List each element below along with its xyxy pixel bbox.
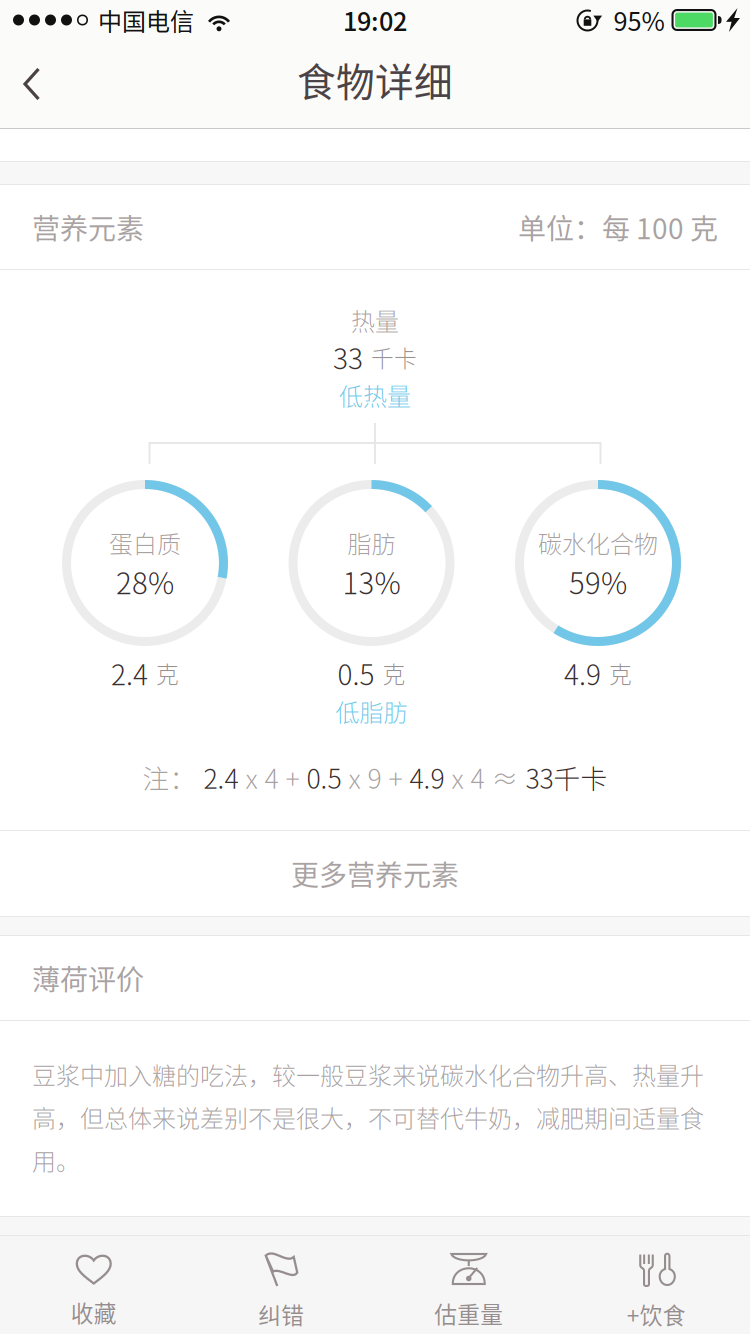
staticText: 9	[367, 758, 381, 796]
button[interactable]: 纠错	[187, 1236, 375, 1334]
staticText: 收藏	[71, 1296, 117, 1328]
button[interactable]: 收藏	[0, 1236, 187, 1334]
staticText: x	[348, 758, 360, 796]
staticText: 克	[382, 657, 405, 689]
staticText: 热量	[351, 303, 399, 337]
staticText: 薄荷评价	[32, 958, 144, 998]
button[interactable]: +饮食	[562, 1236, 750, 1334]
staticText: 克	[609, 657, 632, 689]
staticText: 0.5	[337, 653, 374, 693]
staticText: 19:02	[343, 2, 407, 38]
staticText: 2.4	[111, 653, 148, 693]
staticText: 营养元素	[32, 207, 144, 247]
staticText: 单位：每 100 克	[518, 207, 718, 247]
staticText: +饮食	[627, 1298, 686, 1330]
staticText: 59%	[569, 560, 627, 603]
staticText: 豆浆中加入糖的吃法，较一般豆浆来说碳水化合物升高、热量升高，但总体来说差别不是很…	[32, 1057, 704, 1177]
staticText: 中国电信	[98, 3, 194, 37]
staticText: 更多营养元素	[291, 853, 459, 894]
staticText: 4	[264, 758, 278, 796]
staticText: 4	[470, 758, 484, 796]
staticText: x	[451, 758, 463, 796]
staticText: 纠错	[258, 1298, 304, 1330]
staticText: 低脂肪	[335, 694, 407, 728]
staticText: 28%	[116, 560, 174, 603]
staticText: 注：	[142, 758, 196, 796]
staticText: 13%	[342, 560, 400, 603]
staticText: 估重量	[434, 1297, 503, 1329]
staticText: 4.9	[409, 758, 444, 796]
staticText: 千卡	[371, 341, 417, 373]
button[interactable]: 返回	[0, 40, 70, 128]
button[interactable]: 更多营养元素	[0, 831, 750, 916]
staticText: 0.5	[306, 758, 341, 796]
staticText: 食物详细	[297, 51, 453, 107]
staticText: 克	[156, 657, 179, 689]
staticText: ≈	[491, 758, 518, 796]
staticText: x	[245, 758, 257, 796]
staticText: 低热量	[339, 378, 411, 412]
staticText: 33	[333, 337, 363, 377]
staticText: 95%	[613, 2, 664, 38]
staticText: +	[388, 758, 402, 796]
staticText: 4.9	[564, 653, 601, 693]
staticText: 33千卡	[525, 758, 607, 796]
staticText: 碳水化合物	[538, 525, 658, 560]
button[interactable]: 估重量	[375, 1236, 562, 1334]
staticText: +	[285, 758, 299, 796]
staticText: 蛋白质	[109, 525, 181, 560]
staticText: 脂肪	[347, 525, 395, 560]
staticText: 2.4	[203, 758, 238, 796]
